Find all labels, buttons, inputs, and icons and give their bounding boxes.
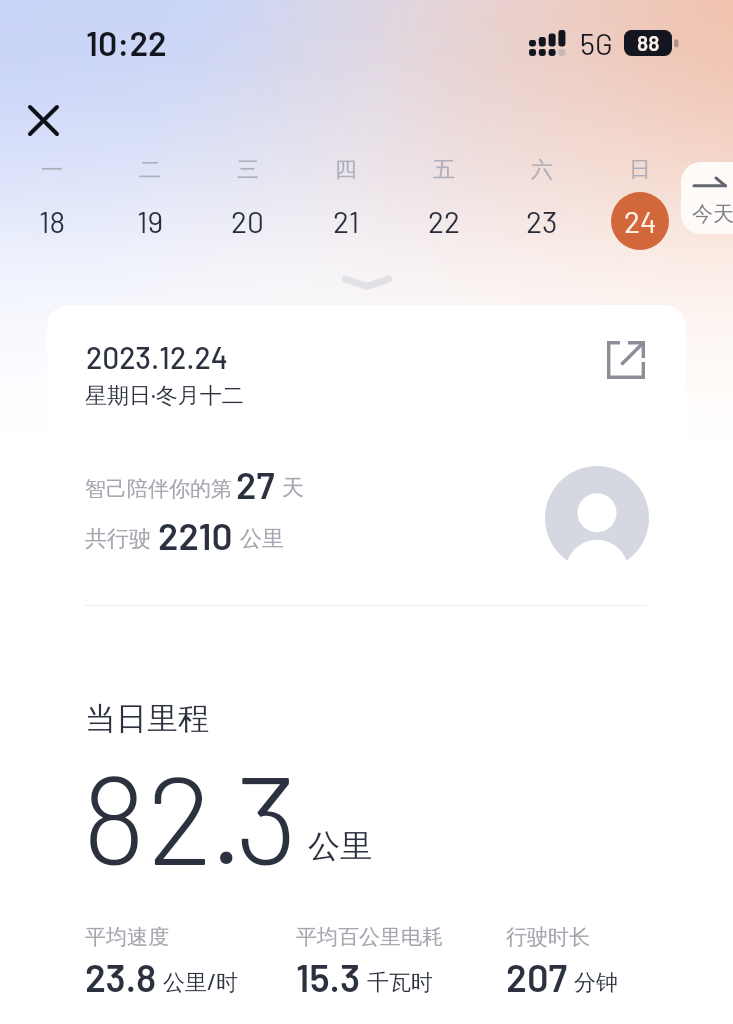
- staticText: 2210: [158, 513, 233, 557]
- staticText: 分钟: [574, 969, 618, 997]
- button[interactable]: 四: [306, 156, 386, 250]
- staticText: .: [209, 741, 244, 890]
- staticText: 今天: [692, 201, 733, 227]
- staticText: 行驶时长: [506, 924, 590, 950]
- staticText: 天: [282, 474, 304, 502]
- staticText: 20: [231, 203, 265, 239]
- button[interactable]: 日: [600, 156, 680, 250]
- staticText: 智己陪伴你的第: [85, 476, 232, 502]
- staticText: 2: [147, 741, 213, 890]
- staticText: 公里/时: [163, 968, 239, 997]
- staticText: 三: [237, 156, 259, 184]
- staticText: 星期日·冬月十二: [85, 381, 244, 410]
- staticText: 10:22: [86, 22, 167, 63]
- staticText: 一: [41, 156, 63, 184]
- staticText: 3: [235, 741, 299, 890]
- staticText: 共行驶: [85, 525, 151, 553]
- button[interactable]: 二: [110, 156, 190, 250]
- staticText: 23: [526, 203, 558, 239]
- button[interactable]: 今天: [681, 162, 733, 234]
- button[interactable]: Close: [21, 98, 65, 142]
- button[interactable]: 一: [12, 156, 92, 250]
- staticText: 公里: [240, 525, 284, 553]
- staticText: 207: [506, 954, 568, 1000]
- staticText: 27: [236, 462, 275, 506]
- staticText: 8: [82, 741, 147, 890]
- staticText: 15.3: [296, 954, 361, 1000]
- staticText: 19: [137, 203, 164, 239]
- staticText: 五: [433, 156, 455, 184]
- button[interactable]: 三: [208, 156, 288, 250]
- staticText: 18: [39, 203, 66, 239]
- staticText: 平均百公里电耗: [296, 924, 443, 950]
- staticText: 日: [629, 156, 651, 184]
- button[interactable]: Share: [598, 332, 654, 388]
- staticText: 千瓦时: [367, 969, 433, 997]
- staticText: 二: [139, 156, 161, 184]
- staticText: 六: [531, 156, 553, 184]
- button[interactable]: 五: [404, 156, 484, 250]
- staticText: 5G: [580, 26, 613, 61]
- staticText: 88: [637, 30, 660, 55]
- staticText: 当日里程: [85, 699, 209, 738]
- button[interactable]: 六: [502, 156, 582, 250]
- staticText: 22: [428, 203, 461, 239]
- staticText: 21: [333, 203, 360, 239]
- staticText: 四: [335, 156, 357, 184]
- staticText: 2023.12.24: [86, 339, 228, 375]
- staticText: 23.8: [85, 954, 157, 1000]
- staticText: 24: [624, 203, 657, 239]
- staticText: 平均速度: [85, 924, 169, 950]
- staticText: 公里: [308, 826, 372, 866]
